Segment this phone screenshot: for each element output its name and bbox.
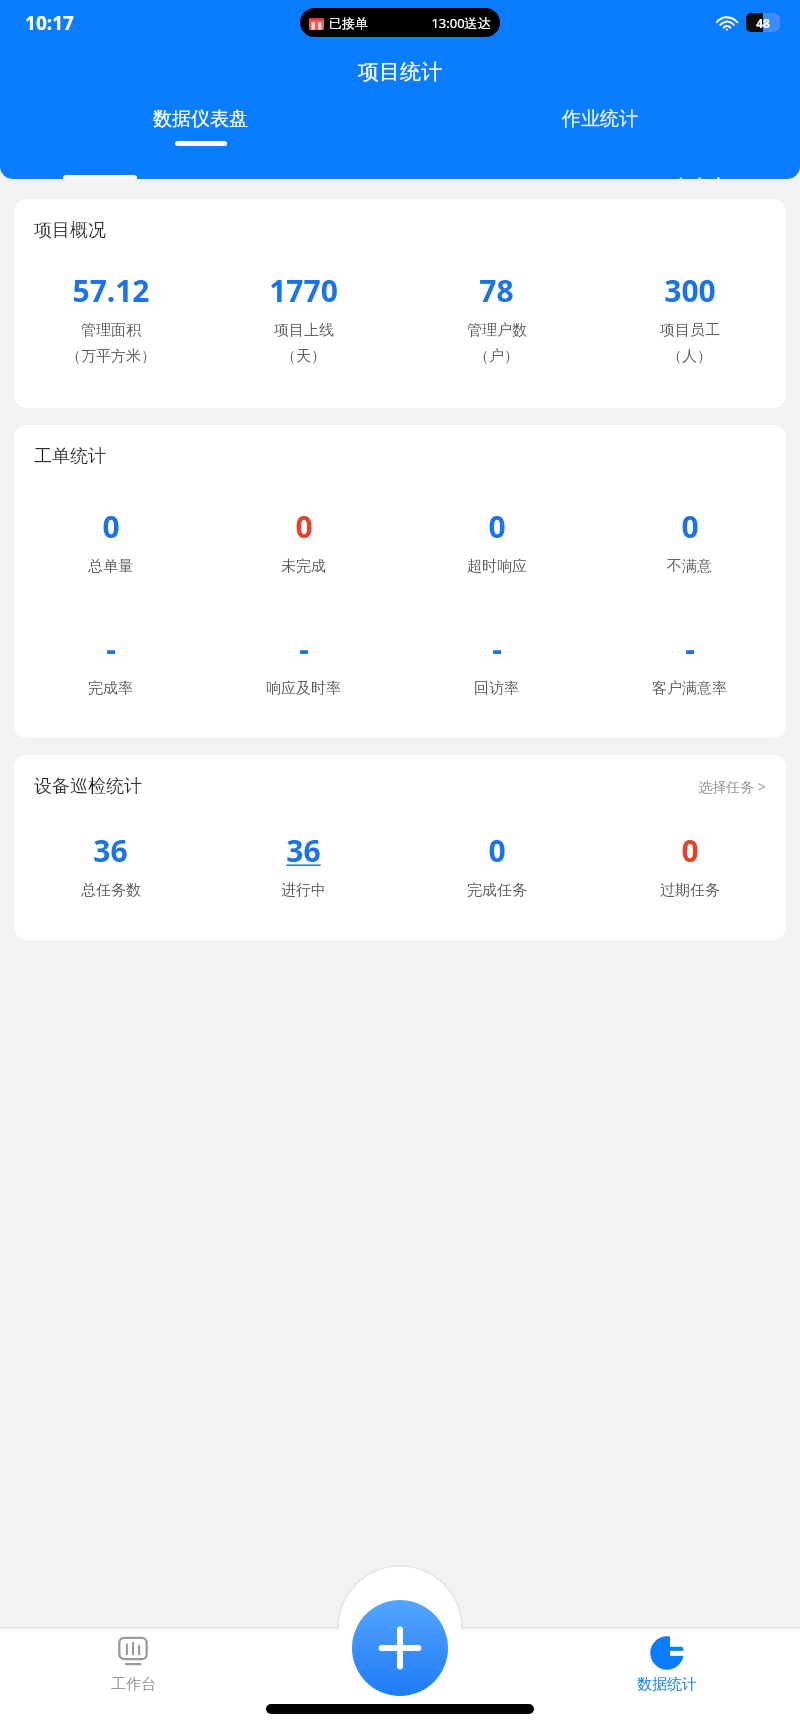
button[interactable]: - <box>400 628 593 698</box>
staticText: 进行中 <box>281 881 326 900</box>
button[interactable]: 工作台 <box>0 1634 266 1694</box>
staticText: 0 <box>102 506 120 547</box>
staticText: - <box>492 628 502 669</box>
staticText: 选择任务 > <box>698 777 766 796</box>
staticText: 自定义 <box>672 175 729 179</box>
staticText: 过期任务 <box>660 881 720 900</box>
button[interactable]: 0 <box>207 506 400 576</box>
staticText: 0 <box>681 830 699 871</box>
staticText: 36 <box>286 830 321 871</box>
staticText: （天） <box>281 347 326 366</box>
button[interactable]: Add <box>352 1600 448 1696</box>
staticText: 57.12 <box>72 270 150 311</box>
staticText: 数据统计 <box>637 1675 697 1694</box>
button[interactable]: - <box>593 628 786 698</box>
button[interactable]: 今天 <box>0 175 200 179</box>
staticText: 超时响应 <box>467 557 527 576</box>
staticText: 0 <box>681 506 699 547</box>
staticText: （户） <box>474 347 519 366</box>
staticText: 总单量 <box>88 557 133 576</box>
button[interactable]: 自定义 <box>600 175 800 179</box>
staticText: 0 <box>295 506 313 547</box>
staticText: 工作台 <box>111 1675 156 1694</box>
button[interactable]: - <box>14 628 207 698</box>
staticText: 0 <box>488 830 506 871</box>
staticText: 项目概况 <box>34 219 786 242</box>
staticText: 项目上线 <box>274 321 334 340</box>
button[interactable]: 数据仪表盘 <box>0 107 400 159</box>
staticText: 总任务数 <box>81 881 141 900</box>
staticText: 工单统计 <box>34 445 786 468</box>
button[interactable]: 0 <box>400 830 593 900</box>
button[interactable]: 36 <box>14 830 207 900</box>
staticText: （人） <box>667 347 712 366</box>
staticText: 未完成 <box>281 557 326 576</box>
staticText: 10:17 <box>25 10 74 36</box>
button[interactable]: 0 <box>400 506 593 576</box>
staticText: 已接单 <box>329 15 368 31</box>
staticText: 管理户数 <box>467 321 527 340</box>
staticText: - <box>299 628 309 669</box>
staticText: 不满意 <box>667 557 712 576</box>
staticText: 78 <box>479 270 514 311</box>
staticText: 项目统计 <box>0 59 800 85</box>
button[interactable]: 36 <box>207 830 400 900</box>
staticText: 项目员工 <box>660 321 720 340</box>
staticText: 13:00送达 <box>431 14 491 32</box>
staticText: 数据仪表盘 <box>153 107 248 131</box>
staticText: 客户满意率 <box>652 679 727 698</box>
staticText: 管理面积 <box>81 321 141 340</box>
button[interactable]: 选择任务 > <box>698 777 766 796</box>
staticText: 300 <box>664 270 716 311</box>
button[interactable]: 1770 <box>207 270 400 366</box>
staticText: 48 <box>756 15 770 31</box>
staticText: - <box>106 628 116 669</box>
button[interactable]: 0 <box>593 830 786 900</box>
staticText: 1770 <box>269 270 338 311</box>
button[interactable]: 57.12 <box>14 270 207 366</box>
staticText: 0 <box>488 506 506 547</box>
button[interactable]: 0 <box>593 506 786 576</box>
staticText: 回访率 <box>474 679 519 698</box>
staticText: 完成任务 <box>467 881 527 900</box>
staticText: 完成率 <box>88 679 133 698</box>
staticText: - <box>685 628 695 669</box>
staticText: 作业统计 <box>562 107 638 131</box>
staticText: 36 <box>93 830 128 871</box>
button[interactable]: 0 <box>14 506 207 576</box>
staticText: 响应及时率 <box>266 679 341 698</box>
button[interactable]: 数据统计 <box>533 1634 800 1694</box>
staticText: 设备巡检统计 <box>34 775 142 798</box>
button[interactable]: 作业统计 <box>400 107 800 159</box>
button[interactable]: 300 <box>593 270 786 366</box>
button[interactable]: 78 <box>400 270 593 366</box>
button[interactable]: - <box>207 628 400 698</box>
staticText: （万平方米） <box>66 347 156 366</box>
